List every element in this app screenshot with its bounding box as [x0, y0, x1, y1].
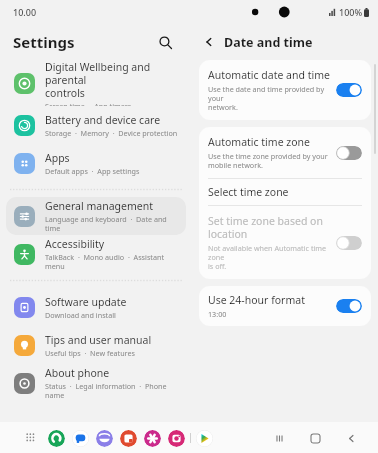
staticText: Settings: [13, 32, 75, 52]
staticText: Battery and device care: [45, 113, 161, 127]
button[interactable]: Search settings: [152, 29, 178, 55]
staticText: Date and time: [224, 34, 313, 51]
button[interactable]: Apps: [22, 429, 40, 447]
button[interactable]: Set time zone based on location: [199, 206, 371, 279]
staticText: Default apps · App settings: [45, 166, 140, 176]
button[interactable]: internet: [96, 430, 113, 447]
staticText: Select time zone: [208, 185, 289, 199]
button[interactable]: Recent apps: [268, 427, 290, 449]
button[interactable]: Automatic time zone: [199, 127, 371, 178]
button[interactable]: messages: [72, 430, 89, 447]
staticText: Apps: [45, 151, 70, 165]
button[interactable]: On: [336, 299, 362, 313]
button[interactable]: Digital Wellbeing and parental controls: [6, 60, 186, 106]
staticText: Digital Wellbeing and parental controls: [45, 60, 180, 100]
staticText: General management: [45, 199, 153, 213]
staticText: Screen time · App timers: [45, 101, 132, 106]
staticText: About phone: [45, 366, 110, 380]
button[interactable]: Off: [336, 146, 362, 160]
staticText: Use the time zone provided by your mobil…: [208, 151, 328, 170]
button[interactable]: Back: [340, 427, 362, 449]
button[interactable]: On: [336, 83, 362, 97]
staticText: Status · Legal information · Phone name: [45, 381, 180, 400]
button[interactable]: Off: [336, 236, 362, 250]
button[interactable]: Software update: [6, 288, 186, 326]
staticText: Not available when Automatic time zone i…: [208, 243, 330, 271]
staticText: Set time zone based on location: [208, 214, 323, 241]
button[interactable]: Apps: [6, 144, 186, 182]
button[interactable]: About phone: [6, 364, 186, 402]
staticText: Accessibility: [45, 237, 105, 251]
staticText: Use 24-hour format: [208, 293, 305, 307]
staticText: Download and install: [45, 310, 116, 320]
button[interactable]: Tips and user manual: [6, 326, 186, 364]
button[interactable]: play: [196, 430, 213, 447]
staticText: Useful tips · New features: [45, 348, 135, 358]
button[interactable]: Home: [304, 427, 326, 449]
staticText: Storage · Memory · Device protection: [45, 128, 178, 138]
button[interactable]: insta: [168, 430, 185, 447]
button[interactable]: General management: [6, 197, 186, 235]
staticText: 10.00: [13, 6, 37, 18]
staticText: Tips and user manual: [45, 333, 152, 347]
staticText: Use the date and time provided by your n…: [208, 84, 330, 112]
button[interactable]: gallery: [120, 430, 137, 447]
staticText: Language and keyboard · Date and time: [45, 214, 180, 233]
button[interactable]: Select time zone: [199, 179, 371, 205]
staticText: 100%: [339, 6, 363, 18]
staticText: 13:00: [208, 309, 227, 319]
staticText: Software update: [45, 295, 127, 309]
button[interactable]: Automatic date and time: [199, 60, 371, 120]
staticText: Automatic date and time: [208, 68, 330, 82]
staticText: Automatic time zone: [208, 135, 310, 149]
button[interactable]: Battery and device care: [6, 106, 186, 144]
button[interactable]: Accessibility: [6, 235, 186, 273]
button[interactable]: Navigate up: [198, 31, 220, 53]
button[interactable]: phone: [48, 430, 65, 447]
button[interactable]: Use 24-hour format: [199, 286, 371, 326]
staticText: TalkBack · Mono audio · Assistant menu: [45, 252, 180, 271]
button[interactable]: snap: [144, 430, 161, 447]
